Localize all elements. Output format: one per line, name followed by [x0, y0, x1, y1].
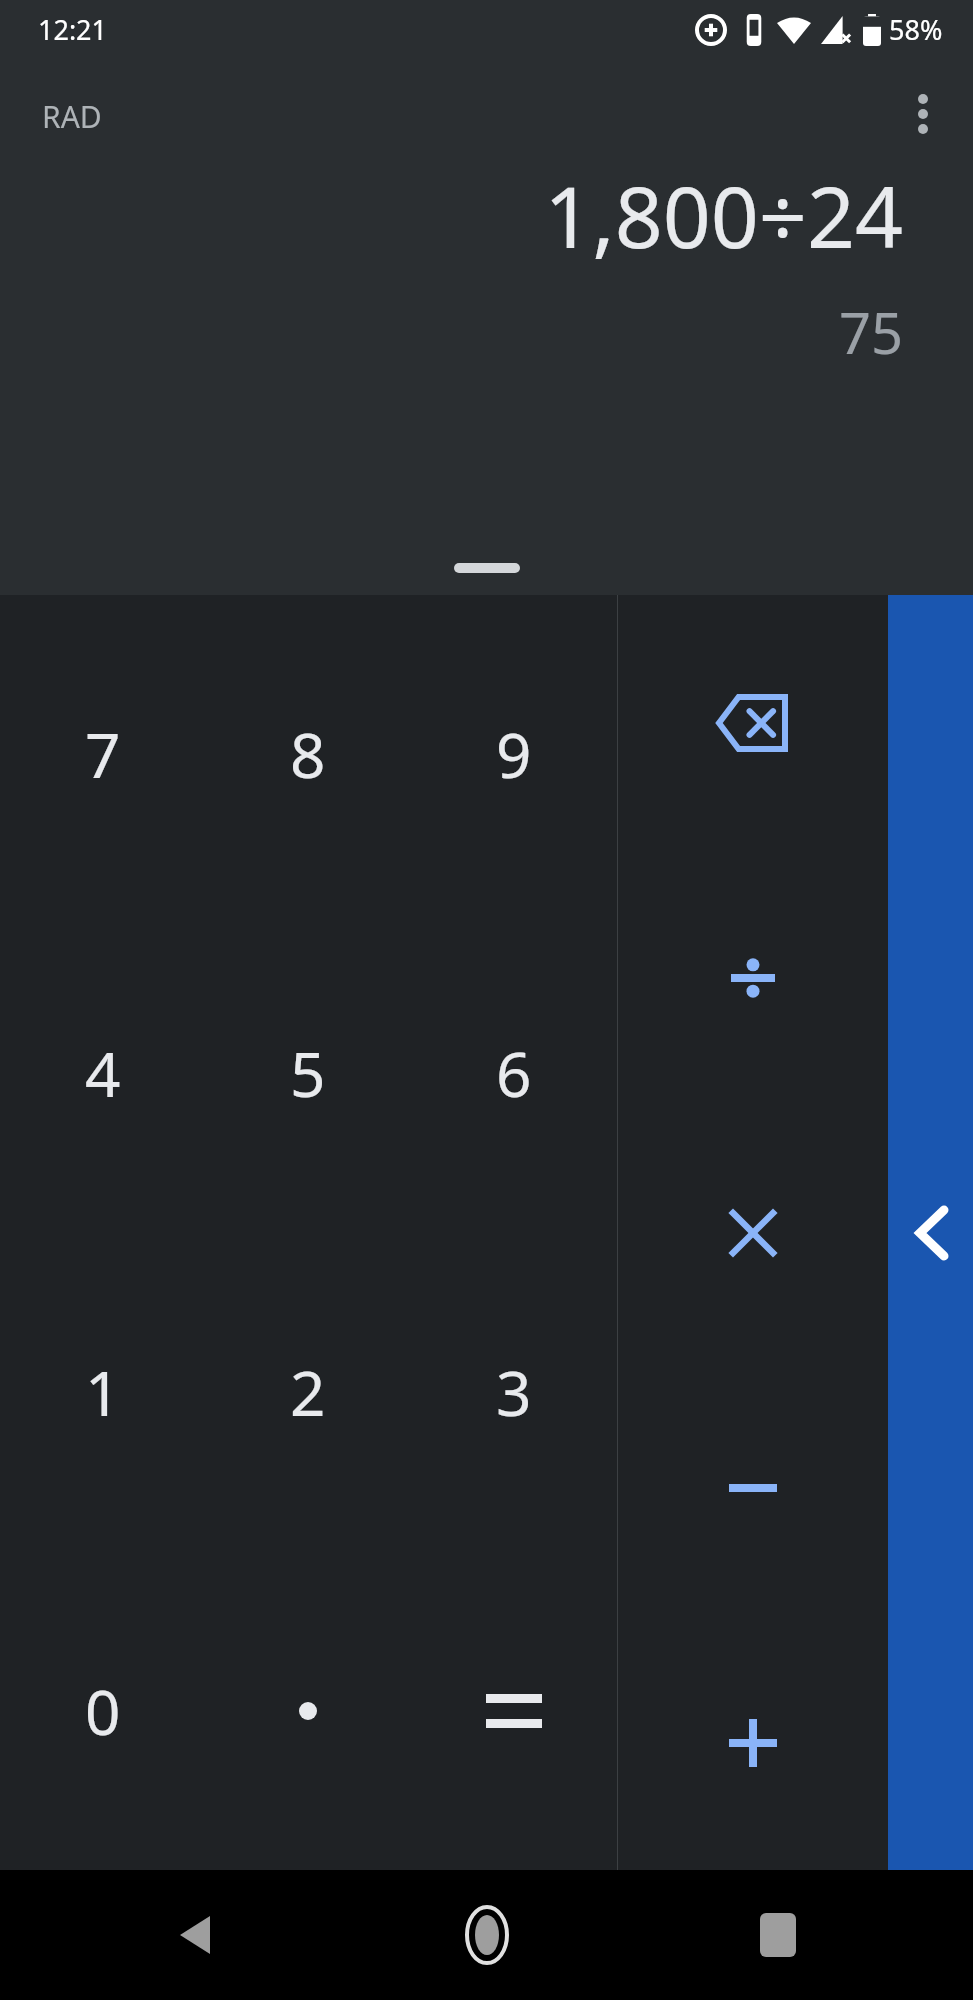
staticText: 8 — [290, 712, 326, 796]
staticText: 75 — [838, 294, 903, 370]
button[interactable]: 5 — [205, 913, 411, 1232]
button[interactable]: Divide — [618, 850, 888, 1105]
button[interactable]: 7 — [0, 595, 205, 913]
button[interactable]: 1 — [0, 1232, 205, 1551]
staticText: 2 — [290, 1350, 326, 1434]
button[interactable]: 2 — [205, 1232, 411, 1551]
button[interactable]: Show advanced pad — [888, 595, 973, 1870]
button[interactable]: Equals — [411, 1551, 617, 1870]
button[interactable]: Backspace — [618, 595, 888, 850]
button[interactable]: 8 — [205, 595, 411, 913]
button[interactable]: Minus — [618, 1360, 888, 1615]
staticText: 12:21 — [38, 11, 108, 48]
staticText: 1 — [85, 1350, 121, 1434]
button[interactable]: 0 — [0, 1551, 205, 1870]
button[interactable]: Back — [150, 1890, 240, 1980]
button[interactable]: 4 — [0, 913, 205, 1232]
button[interactable]: RAD — [42, 96, 102, 137]
button[interactable]: Plus — [618, 1615, 888, 1870]
button[interactable]: 9 — [411, 595, 617, 913]
staticText: 5 — [290, 1031, 326, 1115]
staticText: 3 — [496, 1350, 532, 1434]
button[interactable]: 6 — [411, 913, 617, 1232]
staticText: 1,800÷24 — [544, 158, 903, 272]
staticText: 9 — [496, 712, 532, 796]
staticText: 6 — [496, 1031, 532, 1115]
button[interactable]: 3 — [411, 1232, 617, 1551]
button[interactable]: Multiply — [618, 1105, 888, 1360]
button[interactable]: Recent apps — [733, 1890, 823, 1980]
staticText: 4 — [85, 1031, 121, 1115]
button[interactable]: Decimal point — [205, 1551, 411, 1870]
button[interactable]: More options — [887, 78, 959, 150]
staticText: 0 — [85, 1669, 121, 1753]
staticText: 58% — [889, 11, 943, 48]
button[interactable]: Expand history — [454, 563, 520, 573]
staticText: 7 — [85, 712, 121, 796]
button[interactable]: Home — [442, 1890, 532, 1980]
